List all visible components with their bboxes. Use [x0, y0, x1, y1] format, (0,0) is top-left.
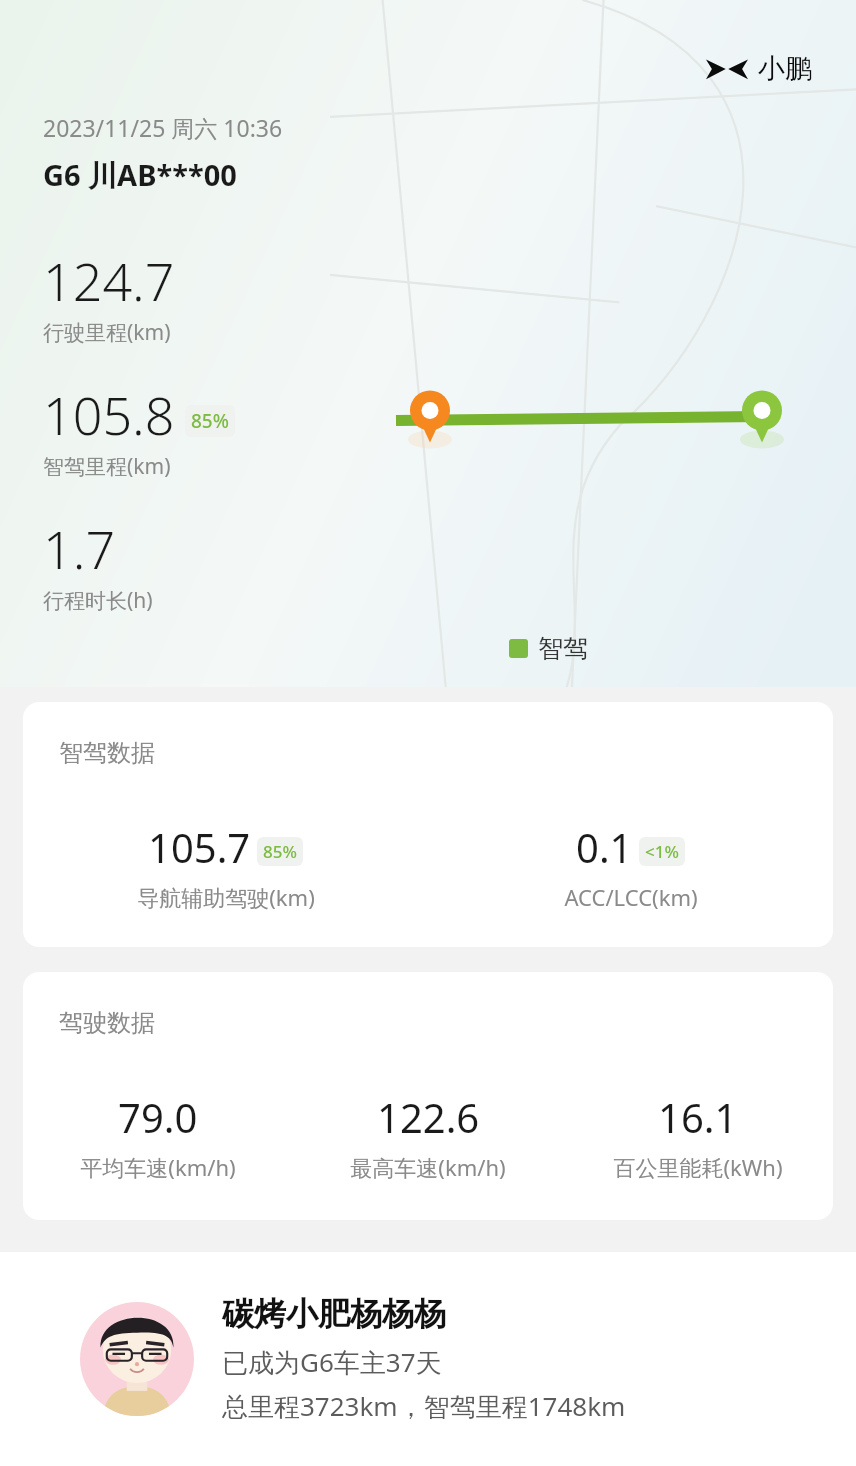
- staticText: 导航辅助驾驶(km): [137, 882, 315, 912]
- staticText: ACC/LCC(km): [564, 882, 698, 912]
- staticText: 行程时长(h): [43, 586, 153, 615]
- staticText: G6 川AB***00: [43, 155, 237, 195]
- staticText: 小鹏: [758, 52, 812, 86]
- staticText: 105.8: [43, 379, 175, 450]
- staticText: 智驾数据: [59, 738, 155, 768]
- staticText: 2023/11/25 周六 10:36: [43, 112, 283, 143]
- staticText: <1%: [645, 840, 679, 863]
- button[interactable]: 智驾数据: [23, 702, 833, 947]
- staticText: 105.7: [148, 820, 251, 874]
- button[interactable]: 驾驶数据: [23, 972, 833, 1220]
- staticText: 122.6: [377, 1090, 480, 1144]
- button[interactable]: XPeng: [702, 48, 816, 90]
- staticText: 85%: [191, 408, 229, 434]
- staticText: 1.7: [43, 513, 116, 584]
- staticText: 驾驶数据: [59, 1008, 155, 1038]
- staticText: 行驶里程(km): [43, 318, 171, 347]
- button[interactable]: 碳烤小肥杨杨杨: [0, 1252, 856, 1466]
- staticText: 已成为G6车主37天: [222, 1344, 442, 1380]
- staticText: 16.1: [658, 1090, 738, 1144]
- staticText: 0.1: [576, 820, 633, 874]
- staticText: 79.0: [118, 1090, 198, 1144]
- staticText: 百公里能耗(kWh): [613, 1152, 783, 1182]
- staticText: 智驾: [538, 633, 588, 664]
- staticText: 85%: [263, 840, 297, 863]
- staticText: 124.7: [43, 245, 175, 316]
- staticText: 智驾里程(km): [43, 452, 171, 481]
- staticText: 总里程3723km，智驾里程1748km: [222, 1388, 626, 1424]
- staticText: 最高车速(km/h): [350, 1152, 506, 1182]
- staticText: 碳烤小肥杨杨杨: [222, 1294, 446, 1334]
- staticText: 平均车速(km/h): [80, 1152, 236, 1182]
